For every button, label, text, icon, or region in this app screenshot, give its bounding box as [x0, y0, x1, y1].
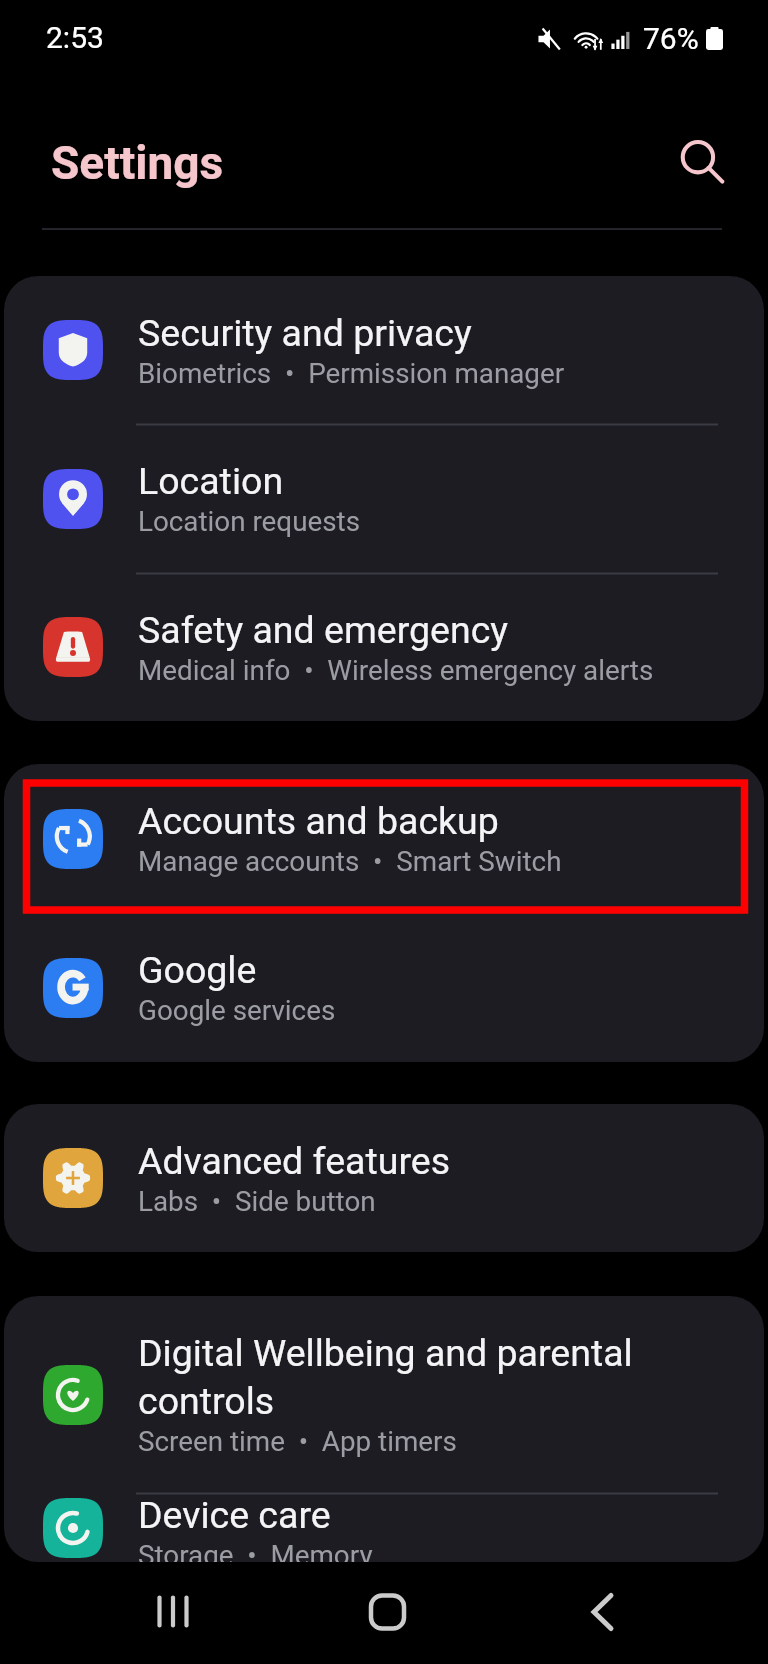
staticText: Settings [51, 136, 224, 190]
staticText: Storage • Memory [138, 1539, 373, 1562]
staticText: Location [138, 459, 284, 503]
staticText: Device care [138, 1493, 331, 1537]
staticText: 2:53 [46, 20, 104, 55]
staticText: 76% [643, 21, 699, 56]
button[interactable]: Digital Wellbeing and parental controls [4, 1296, 764, 1493]
staticText: Google [138, 948, 257, 992]
button[interactable]: Advanced features [4, 1104, 764, 1252]
staticText: Screen time • App timers [138, 1425, 457, 1458]
button[interactable]: Security and privacy [4, 276, 764, 424]
staticText: Google services [138, 994, 336, 1027]
button[interactable]: Home [344, 1573, 424, 1653]
staticText: Biometrics • Permission manager [138, 357, 565, 390]
staticText: Manage accounts • Smart Switch [138, 845, 562, 878]
staticText: Digital Wellbeing and parental controls [138, 1331, 719, 1423]
button[interactable]: Safety and emergency [4, 573, 764, 721]
button[interactable]: Device care [4, 1493, 764, 1562]
button[interactable]: Google [4, 913, 764, 1062]
staticText: Location requests [138, 505, 360, 538]
button[interactable]: Accounts and backup [4, 764, 764, 913]
staticText: Medical info • Wireless emergency alerts [138, 654, 654, 687]
button[interactable]: Search [665, 125, 739, 199]
staticText: Safety and emergency [138, 608, 509, 652]
button[interactable]: Back [560, 1573, 640, 1653]
staticText: Advanced features [138, 1139, 450, 1183]
staticText: Security and privacy [138, 311, 472, 355]
button[interactable]: Recent apps [132, 1573, 212, 1653]
staticText: Labs • Side button [138, 1185, 376, 1218]
button[interactable]: Location [4, 424, 764, 573]
staticText: Accounts and backup [138, 799, 499, 843]
